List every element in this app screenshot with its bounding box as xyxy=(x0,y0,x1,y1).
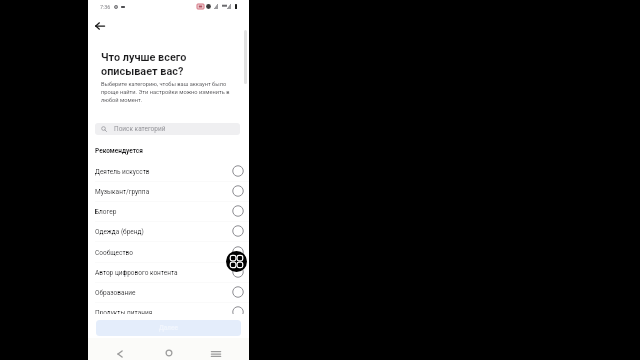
button[interactable]: Одежда (бренд) xyxy=(88,222,249,242)
staticText: Выберите категорию, чтобы ваш аккаунт бы… xyxy=(101,81,236,104)
staticText: Далее xyxy=(159,324,179,332)
button[interactable]: Recent apps xyxy=(206,344,226,360)
staticText: Деятель искусств xyxy=(95,168,232,176)
button[interactable]: Сообщество xyxy=(88,243,249,263)
staticText: Продукты питания xyxy=(95,309,232,314)
staticText: Блогер xyxy=(95,208,232,216)
staticText: Музыкант/группа xyxy=(95,188,232,196)
button[interactable]: Поиск категорий xyxy=(95,123,240,135)
staticText: Рекомендуется xyxy=(95,147,143,155)
button[interactable]: Back xyxy=(110,344,130,360)
button[interactable]: Музыкант/группа xyxy=(88,182,249,202)
button[interactable]: Home xyxy=(159,343,179,360)
button[interactable]: Back xyxy=(90,16,110,36)
button[interactable]: Деятель искусств xyxy=(88,162,249,182)
button[interactable]: Автор цифрового контента xyxy=(88,263,249,283)
staticText: 7:36 xyxy=(100,4,111,10)
staticText: Сообщество xyxy=(95,249,232,257)
staticText: Что лучше всего описывает вас? xyxy=(101,51,236,78)
button[interactable]: Блогер xyxy=(88,202,249,222)
button[interactable]: Game tools xyxy=(226,251,247,272)
button[interactable]: Образование xyxy=(88,283,249,303)
button[interactable]: Продукты питания xyxy=(88,303,249,314)
staticText: Одежда (бренд) xyxy=(95,228,232,236)
staticText: Образование xyxy=(95,289,232,297)
staticText: Автор цифрового контента xyxy=(95,269,232,277)
staticText: Поиск категорий xyxy=(114,125,166,133)
